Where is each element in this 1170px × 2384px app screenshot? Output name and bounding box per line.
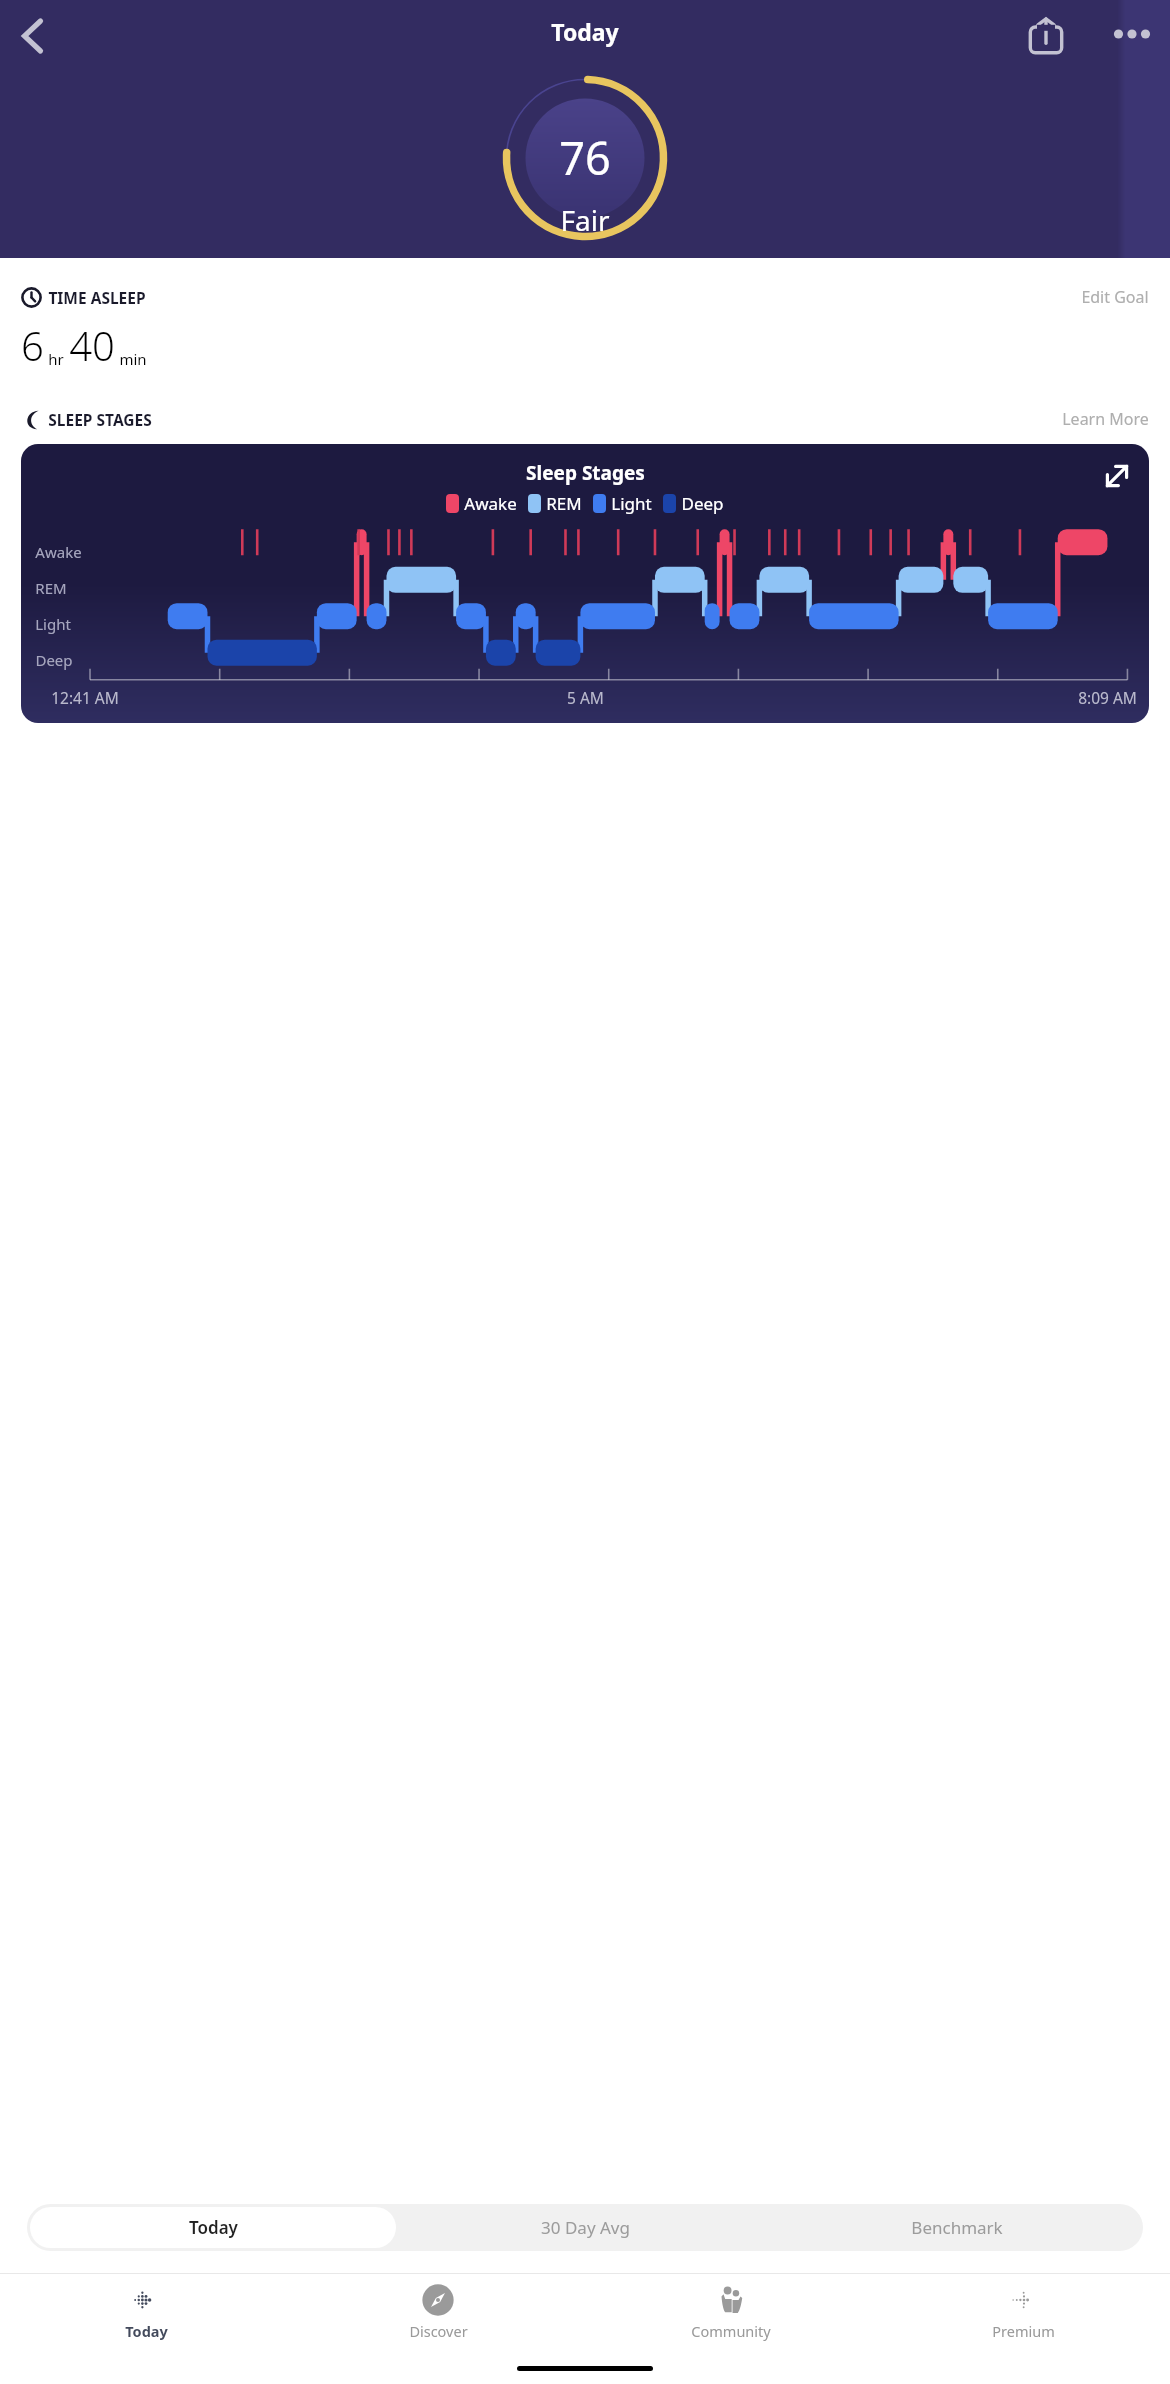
staticText: Premium	[992, 2321, 1055, 2341]
staticText: Awake	[35, 542, 82, 562]
staticText: Today	[551, 16, 619, 47]
staticText: Today	[125, 2321, 168, 2341]
staticText: Today	[189, 2216, 238, 2239]
staticText: hr	[48, 349, 64, 369]
button[interactable]: Today	[0, 2274, 292, 2352]
staticText: TIME ASLEEP	[48, 287, 146, 308]
button[interactable]: More options	[1104, 8, 1160, 64]
button[interactable]: Discover	[292, 2274, 584, 2352]
staticText: Edit Goal	[1081, 286, 1149, 308]
staticText: Deep	[35, 650, 73, 670]
button[interactable]: Expand chart	[1093, 452, 1141, 500]
staticText: REM	[546, 492, 582, 515]
staticText: SLEEP STAGES	[48, 409, 152, 430]
staticText: 12:41 AM	[51, 687, 119, 708]
staticText: Learn More	[1062, 408, 1149, 430]
button[interactable]: Back	[4, 8, 60, 64]
button[interactable]: 30 Day Avg	[399, 2204, 771, 2251]
staticText: Community	[691, 2321, 771, 2341]
button[interactable]: Community	[584, 2274, 877, 2352]
staticText: 6	[21, 318, 44, 372]
staticText: Light	[611, 492, 652, 515]
staticText: Deep	[681, 492, 724, 515]
staticText: Light	[35, 614, 71, 634]
button[interactable]: SLEEP STAGES	[21, 408, 1149, 430]
staticText: Sleep Stages	[526, 460, 645, 486]
button[interactable]: Premium	[877, 2274, 1170, 2352]
staticText: 40	[69, 318, 115, 372]
staticText: 8:09 AM	[1078, 687, 1137, 708]
button[interactable]: Today	[30, 2207, 396, 2248]
button[interactable]: Sleep Stages	[21, 444, 1149, 723]
staticText: Fair	[560, 201, 610, 239]
staticText: REM	[35, 578, 67, 598]
staticText: Benchmark	[911, 2216, 1003, 2239]
staticText: Discover	[409, 2321, 468, 2341]
button[interactable]: Benchmark	[771, 2204, 1143, 2251]
staticText: 30 Day Avg	[541, 2216, 630, 2239]
staticText: Awake	[464, 492, 517, 515]
button[interactable]: TIME ASLEEP	[21, 286, 1149, 308]
staticText: 76	[559, 127, 611, 188]
staticText: 5 AM	[567, 687, 604, 708]
staticText: min	[119, 349, 147, 369]
button[interactable]: Share	[1018, 8, 1074, 64]
